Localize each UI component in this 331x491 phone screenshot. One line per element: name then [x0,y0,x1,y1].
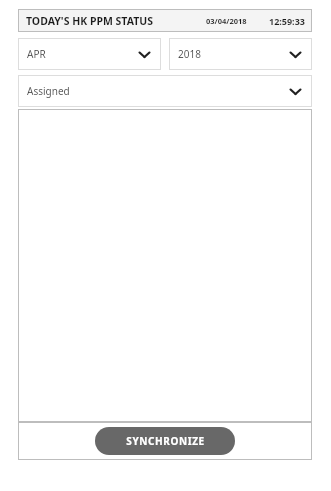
staticText: 12:59:33 [269,15,305,27]
staticText: 03/04/2018 [206,16,247,26]
button[interactable]: Assigned [18,75,312,107]
staticText: APR [27,47,46,61]
button[interactable]: APR [18,38,161,70]
staticText: TODAY'S HK PPM STATUS [26,14,153,28]
button[interactable]: SYNCHRONIZE [95,427,235,455]
staticText: SYNCHRONIZE [126,434,205,448]
staticText: Assigned [27,84,70,98]
staticText: 2018 [178,47,201,61]
button[interactable]: 2018 [169,38,312,70]
